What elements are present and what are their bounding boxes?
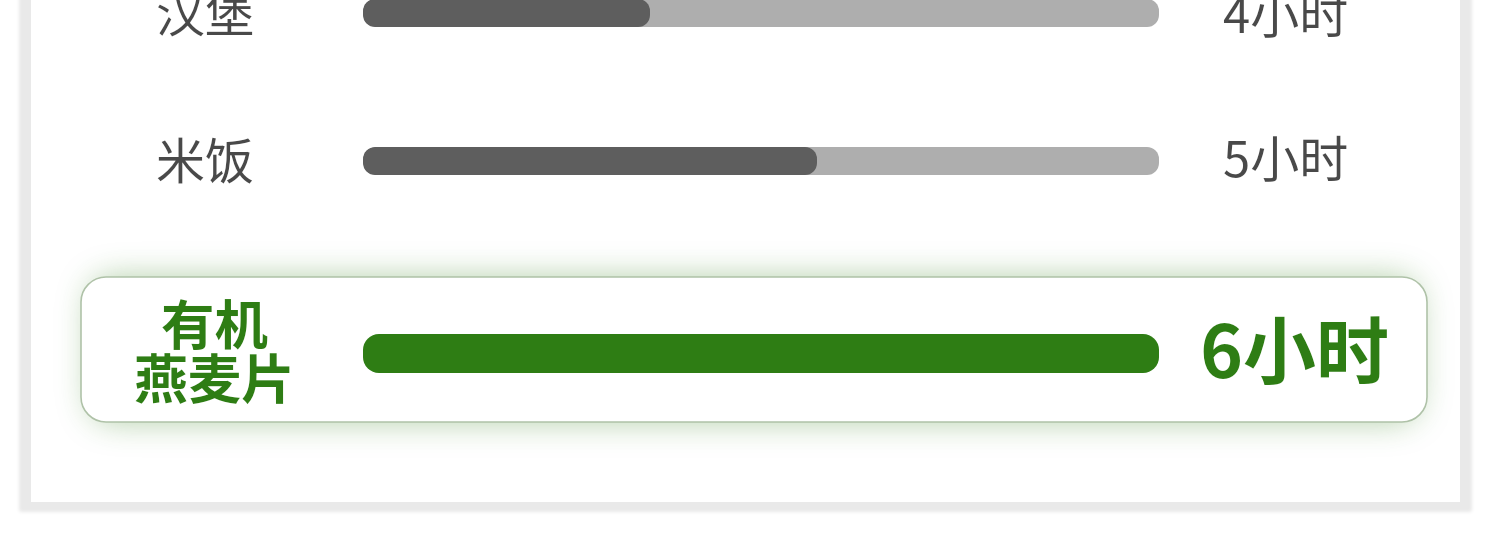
staticText: 6小时 [1200, 293, 1390, 399]
staticText: 汉堡 [156, 0, 255, 46]
staticText: 4小时 [1223, 0, 1349, 47]
button[interactable]: 米饭 [0, 121, 1460, 201]
staticText: 米饭 [156, 122, 255, 193]
button[interactable]: 汉堡 [0, 0, 1460, 53]
button[interactable]: 有机 燕麦片 [81, 277, 1427, 422]
staticText: 有机 燕麦片 [134, 283, 295, 415]
staticText: 5小时 [1223, 120, 1349, 191]
